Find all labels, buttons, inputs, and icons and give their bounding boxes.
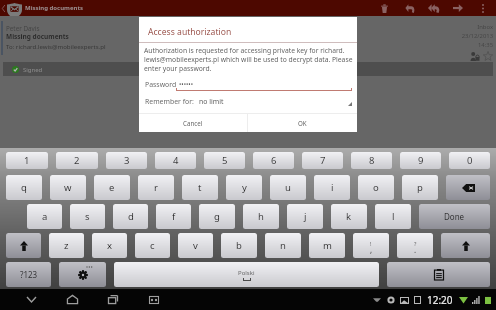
button[interactable]: o	[358, 175, 394, 200]
staticText: z	[64, 239, 69, 252]
staticText: d	[128, 210, 134, 223]
staticText: .	[414, 244, 417, 255]
button[interactable]: 1	[6, 152, 48, 169]
button[interactable]: Done	[419, 204, 490, 229]
staticText: 5	[222, 154, 228, 167]
button[interactable]: h	[243, 204, 279, 229]
staticText: t	[198, 181, 202, 194]
staticText: 12:20	[427, 293, 453, 307]
staticText: 4	[173, 154, 179, 167]
button[interactable]: Forward	[446, 0, 470, 16]
button[interactable]: 9	[400, 152, 441, 169]
staticText: Missing documents	[25, 4, 84, 12]
staticText: Authorization is requested for accessing…	[144, 46, 353, 73]
button[interactable]: m	[309, 233, 345, 258]
staticText: Signed	[23, 66, 43, 74]
button[interactable]: More options	[472, 0, 493, 16]
staticText: ?123	[20, 269, 38, 280]
button[interactable]: u	[270, 175, 306, 200]
staticText: i	[331, 181, 334, 194]
button[interactable]: Comma	[353, 233, 389, 258]
button[interactable]: 6	[253, 152, 294, 169]
button[interactable]: Clipboard	[387, 262, 490, 287]
button[interactable]: 0	[449, 152, 490, 169]
button[interactable]: 3	[106, 152, 147, 169]
button[interactable]: j	[287, 204, 323, 229]
button[interactable]: Home	[60, 289, 84, 310]
staticText: Remember for:	[145, 97, 194, 106]
button[interactable]: c	[135, 233, 170, 258]
button[interactable]: g	[199, 204, 235, 229]
button[interactable]: Delete	[372, 0, 397, 16]
button[interactable]: ?123	[6, 262, 51, 287]
staticText: b	[236, 239, 242, 252]
button[interactable]: Recent apps	[101, 289, 125, 310]
staticText: s	[85, 210, 90, 223]
button[interactable]: d	[113, 204, 148, 229]
button[interactable]: p	[402, 175, 438, 200]
button[interactable]: f	[156, 204, 191, 229]
staticText: 8	[369, 154, 375, 167]
button[interactable]: Shift	[6, 233, 41, 258]
button[interactable]: Navigate up	[1, 0, 24, 16]
staticText: !	[370, 240, 372, 247]
button[interactable]: Cancel	[139, 114, 247, 132]
button[interactable]: Reply all	[421, 0, 446, 16]
button[interactable]: q	[6, 175, 42, 200]
button[interactable]: 8	[351, 152, 392, 169]
staticText: p	[417, 181, 423, 194]
button[interactable]: Settings	[59, 262, 106, 287]
staticText: 2	[74, 154, 80, 167]
staticText: 1	[24, 154, 30, 167]
staticText: Cancel	[183, 119, 203, 127]
button[interactable]: 7	[302, 152, 343, 169]
button[interactable]: x	[92, 233, 127, 258]
button[interactable]: t	[182, 175, 218, 200]
staticText: Done	[444, 211, 465, 222]
staticText: k	[346, 210, 352, 223]
button[interactable]: Remember for:	[139, 95, 357, 107]
button[interactable]: Shift	[441, 233, 490, 258]
staticText: 7	[320, 154, 326, 167]
button[interactable]: 5	[204, 152, 245, 169]
button[interactable]: OK	[248, 114, 357, 132]
button[interactable]: Hide keyboard	[19, 289, 43, 310]
staticText: l	[392, 210, 395, 223]
staticText: Missing documents	[6, 32, 69, 41]
staticText: ?	[414, 240, 417, 247]
button[interactable]: Period	[397, 233, 433, 258]
button[interactable]: Switch keyboard	[142, 289, 166, 310]
button[interactable]: Space	[114, 262, 379, 287]
button[interactable]: 2	[56, 152, 98, 169]
staticText: 3	[124, 154, 130, 167]
button[interactable]: w	[50, 175, 86, 200]
button[interactable]: n	[265, 233, 301, 258]
button[interactable]: Reply	[398, 0, 422, 16]
staticText: q	[21, 181, 27, 194]
button[interactable]: l	[375, 204, 411, 229]
staticText: v	[193, 239, 198, 252]
button[interactable]: z	[49, 233, 84, 258]
staticText: Peter Davis	[6, 24, 40, 33]
staticText: Access authorization	[148, 26, 232, 38]
button[interactable]: i	[314, 175, 350, 200]
button[interactable]: k	[331, 204, 367, 229]
button[interactable]: y	[226, 175, 262, 200]
staticText: 14:35	[477, 41, 493, 49]
staticText: x	[107, 239, 113, 252]
button[interactable]: r	[138, 175, 174, 200]
button[interactable]: 4	[155, 152, 196, 169]
button[interactable]: Backspace	[446, 175, 490, 200]
staticText: To: richard.lewis@mobileexperts.pl	[6, 42, 106, 50]
staticText: Password	[145, 80, 177, 89]
button[interactable]: e	[94, 175, 130, 200]
button[interactable]: b	[221, 233, 257, 258]
button[interactable]: v	[178, 233, 213, 258]
staticText: o	[373, 181, 379, 194]
staticText: 9	[418, 154, 424, 167]
staticText: f	[172, 210, 176, 223]
button[interactable]: s	[70, 204, 105, 229]
staticText: a	[42, 210, 48, 223]
staticText: e	[109, 181, 115, 194]
button[interactable]: a	[27, 204, 62, 229]
